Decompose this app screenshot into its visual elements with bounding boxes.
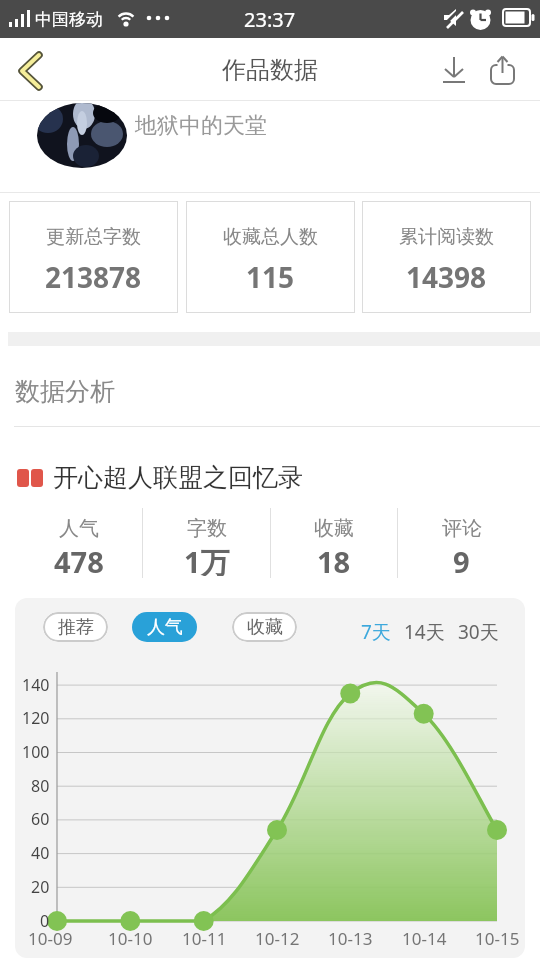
button[interactable]	[478, 46, 526, 94]
button[interactable]: 开心超人联盟之回忆录	[17, 460, 303, 494]
staticText: 人气	[59, 516, 99, 541]
button[interactable]: 收藏	[270, 508, 397, 578]
staticText: 1万	[184, 542, 230, 576]
staticText: 10-09	[28, 927, 73, 950]
staticText: 18	[317, 542, 351, 576]
staticText: 推荐	[58, 616, 94, 639]
button[interactable]: 7天	[353, 618, 398, 646]
staticText: 213878	[45, 258, 142, 292]
button[interactable]: 人气	[132, 612, 197, 642]
staticText: 数据分析	[15, 376, 115, 404]
staticText: 478	[54, 542, 104, 576]
staticText: 作品数据	[222, 55, 318, 85]
button[interactable]: 更新总字数	[9, 201, 178, 313]
staticText: 地狱中的天堂	[135, 112, 267, 140]
staticText: 10-10	[108, 927, 153, 950]
staticText: 9	[453, 542, 470, 576]
staticText: 收藏总人数	[223, 225, 318, 249]
staticText: 10-12	[255, 927, 300, 950]
staticText: 累计阅读数	[399, 225, 494, 249]
button[interactable]: 收藏	[232, 612, 297, 642]
staticText: 10-14	[402, 927, 447, 950]
staticText: 收藏	[314, 516, 354, 541]
staticText: 14398	[406, 258, 487, 292]
staticText: 115	[246, 258, 295, 292]
staticText: 收藏	[247, 616, 283, 639]
button[interactable]: 评论	[398, 508, 525, 578]
staticText: 10-15	[475, 927, 520, 950]
staticText: 60	[31, 808, 50, 830]
staticText: 评论	[442, 516, 482, 541]
staticText: 140	[22, 674, 50, 696]
button[interactable]: 30天	[453, 618, 503, 646]
staticText: 23:37	[244, 6, 296, 33]
staticText: 中国移动	[35, 9, 103, 30]
button[interactable]: 字数	[143, 508, 270, 578]
staticText: 40	[31, 842, 50, 864]
staticText: 开心超人联盟之回忆录	[53, 462, 303, 493]
button[interactable]: 推荐	[43, 612, 108, 642]
button[interactable]	[432, 46, 476, 94]
button[interactable]: 收藏总人数	[186, 201, 355, 313]
button[interactable]: 14天	[399, 618, 449, 646]
staticText: 字数	[187, 516, 227, 541]
staticText: 10-13	[328, 927, 373, 950]
button[interactable]: 人气	[15, 508, 142, 578]
staticText: 14天	[404, 619, 445, 645]
button[interactable]: 累计阅读数	[362, 201, 531, 313]
staticText: 人气	[147, 616, 183, 639]
staticText: 7天	[361, 619, 391, 645]
staticText: 20	[31, 876, 50, 898]
staticText: 120	[22, 707, 50, 729]
staticText: 10-11	[182, 927, 227, 950]
button[interactable]	[0, 38, 62, 100]
staticText: 80	[31, 775, 50, 797]
staticText: 30天	[458, 619, 499, 645]
staticText: 0	[40, 910, 50, 932]
staticText: 更新总字数	[46, 225, 141, 249]
staticText: 100	[22, 741, 50, 763]
